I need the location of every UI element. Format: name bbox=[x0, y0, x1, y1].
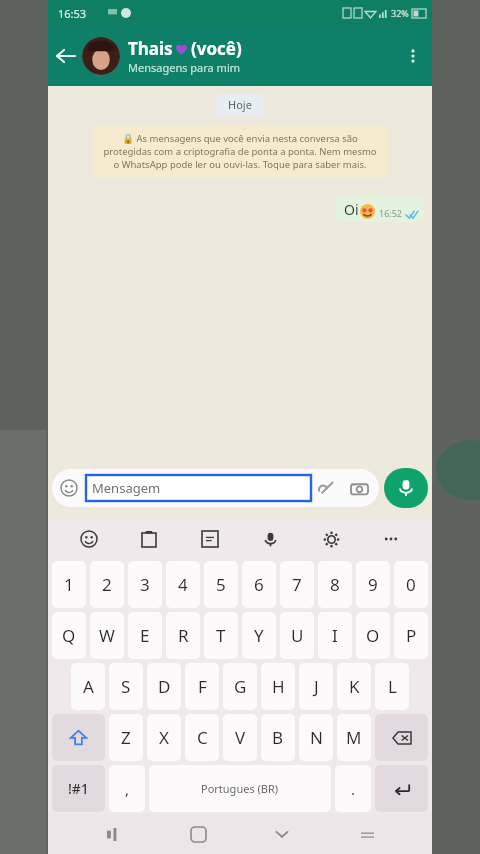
button[interactable]: D bbox=[147, 663, 181, 710]
button[interactable]: 2 bbox=[90, 561, 124, 608]
staticText: T bbox=[216, 624, 226, 647]
button[interactable]: Mensagem bbox=[86, 475, 311, 501]
button[interactable]: 9 bbox=[356, 561, 390, 608]
button[interactable]: G bbox=[223, 663, 257, 710]
button[interactable]: B bbox=[261, 714, 295, 761]
button[interactable]: K bbox=[337, 663, 371, 710]
button[interactable]: L bbox=[375, 663, 409, 710]
button[interactable]: I bbox=[318, 612, 352, 659]
staticText: 0 bbox=[406, 573, 416, 596]
button[interactable]: 3 bbox=[128, 561, 162, 608]
button[interactable]: U bbox=[280, 612, 314, 659]
staticText: 3 bbox=[140, 573, 150, 596]
button[interactable]: Home bbox=[178, 814, 218, 854]
staticText: !#1 bbox=[68, 779, 89, 798]
button[interactable]: Thais bbox=[128, 37, 394, 75]
button[interactable]: Keyboard hide bbox=[347, 814, 387, 854]
button[interactable]: H bbox=[261, 663, 295, 710]
staticText: Z bbox=[121, 726, 131, 749]
button[interactable]: Back bbox=[48, 39, 82, 73]
button[interactable]: 6 bbox=[242, 561, 276, 608]
button[interactable]: E bbox=[128, 612, 162, 659]
staticText: 32% bbox=[391, 7, 409, 19]
staticText: H bbox=[272, 675, 285, 698]
button[interactable]: Emoji bbox=[52, 471, 86, 505]
button[interactable]: 0 bbox=[394, 561, 428, 608]
staticText: W bbox=[99, 624, 115, 647]
staticText: F bbox=[198, 675, 207, 698]
button[interactable]: Y bbox=[242, 612, 276, 659]
staticText: Portugues (BR) bbox=[201, 781, 279, 796]
button[interactable]: Text editing bbox=[190, 519, 230, 559]
staticText: 6 bbox=[254, 573, 264, 596]
button[interactable]: X bbox=[147, 714, 181, 761]
button[interactable]: Settings bbox=[311, 519, 351, 559]
staticText: , bbox=[125, 779, 130, 799]
button[interactable]: 4 bbox=[166, 561, 200, 608]
staticText: L bbox=[388, 675, 397, 698]
staticText: 4 bbox=[178, 573, 188, 596]
button[interactable]: T bbox=[204, 612, 238, 659]
staticText: 16:53 bbox=[58, 6, 87, 21]
staticText: 🔒 As mensagens que você envia nesta conv… bbox=[103, 132, 377, 171]
button[interactable]: Back bbox=[262, 814, 302, 854]
button[interactable]: M bbox=[337, 714, 371, 761]
button[interactable]: More options bbox=[394, 37, 432, 75]
button[interactable]: Enter bbox=[375, 765, 428, 812]
button[interactable]: !#1 bbox=[52, 765, 105, 812]
staticText: I bbox=[332, 624, 338, 647]
button[interactable]: N bbox=[299, 714, 333, 761]
staticText: C bbox=[197, 726, 208, 749]
button[interactable]: S bbox=[109, 663, 143, 710]
staticText: Y bbox=[254, 624, 264, 647]
staticText: M bbox=[346, 726, 362, 749]
button[interactable]: 🔒 As mensagens que você envia nesta conv… bbox=[93, 125, 387, 178]
button[interactable]: P bbox=[394, 612, 428, 659]
button[interactable]: Oi bbox=[336, 196, 424, 222]
button[interactable]: Shift bbox=[52, 714, 105, 761]
staticText: 7 bbox=[292, 573, 302, 596]
button[interactable]: 1 bbox=[52, 561, 86, 608]
staticText: 1 bbox=[64, 573, 74, 596]
staticText: A bbox=[83, 675, 94, 698]
button[interactable]: 7 bbox=[280, 561, 314, 608]
staticText: 2 bbox=[102, 573, 112, 596]
button[interactable]: 5 bbox=[204, 561, 238, 608]
button[interactable]: Voice message bbox=[384, 468, 428, 508]
button[interactable]: Q bbox=[52, 612, 86, 659]
button[interactable]: , bbox=[109, 765, 145, 812]
button[interactable]: J bbox=[299, 663, 333, 710]
button[interactable]: V bbox=[223, 714, 257, 761]
staticText: 8 bbox=[330, 573, 340, 596]
button[interactable]: F bbox=[185, 663, 219, 710]
staticText: Mensagens para mim bbox=[128, 60, 241, 75]
button[interactable]: Recents bbox=[93, 814, 133, 854]
button[interactable]: Backspace bbox=[375, 714, 428, 761]
staticText: P bbox=[406, 624, 417, 647]
button[interactable]: 8 bbox=[318, 561, 352, 608]
staticText: V bbox=[235, 726, 246, 749]
staticText: D bbox=[158, 675, 171, 698]
button[interactable]: O bbox=[356, 612, 390, 659]
button[interactable]: Emoji bbox=[69, 519, 109, 559]
button[interactable]: More bbox=[371, 519, 411, 559]
button[interactable]: Portugues (BR) bbox=[149, 765, 331, 812]
button[interactable]: Attach bbox=[311, 472, 343, 504]
button[interactable]: Voice input bbox=[250, 519, 290, 559]
staticText: (você) bbox=[191, 37, 242, 60]
button[interactable]: . bbox=[335, 765, 371, 812]
staticText: K bbox=[349, 675, 360, 698]
staticText: Thais bbox=[128, 37, 173, 60]
button[interactable]: R bbox=[166, 612, 200, 659]
button[interactable]: C bbox=[185, 714, 219, 761]
button[interactable]: Z bbox=[109, 714, 143, 761]
button[interactable]: W bbox=[90, 612, 124, 659]
staticText: 9 bbox=[368, 573, 378, 596]
staticText: G bbox=[234, 675, 247, 698]
button[interactable]: A bbox=[71, 663, 105, 710]
button[interactable]: Clipboard bbox=[129, 519, 169, 559]
staticText: R bbox=[178, 624, 189, 647]
button[interactable]: Camera bbox=[343, 472, 375, 504]
staticText: Mensagem bbox=[92, 479, 161, 497]
staticText: N bbox=[310, 726, 323, 749]
